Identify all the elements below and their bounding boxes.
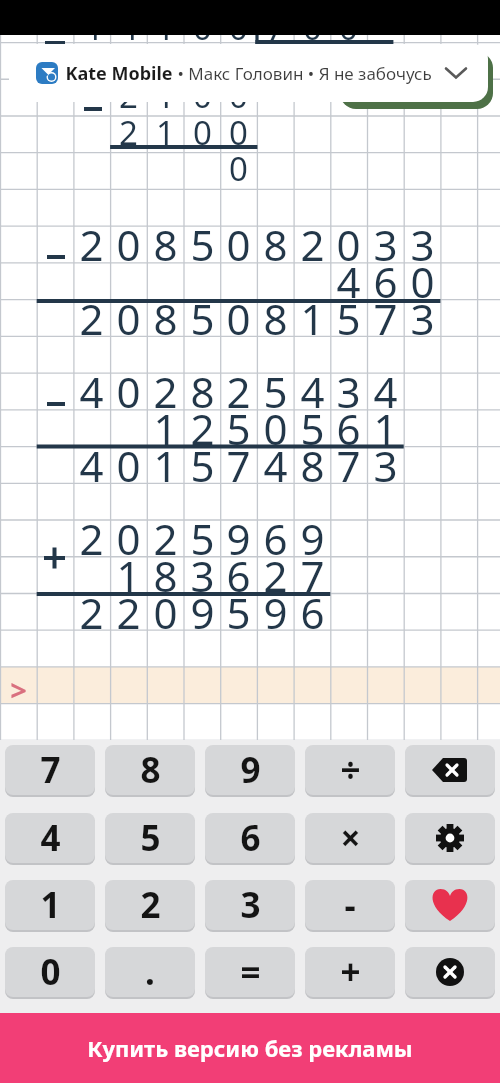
staticText: 7 bbox=[336, 437, 361, 494]
staticText: 1 bbox=[40, 881, 61, 929]
staticText: 0 bbox=[193, 73, 212, 118]
staticText: 9 bbox=[300, 510, 325, 567]
staticText: 0 bbox=[410, 253, 435, 310]
staticText: 6 bbox=[240, 814, 261, 862]
staticText: 9 bbox=[240, 746, 261, 794]
staticText: 7 bbox=[300, 547, 325, 604]
staticText: 7 bbox=[266, 5, 285, 50]
staticText: 1 bbox=[373, 400, 398, 457]
staticText: 0 bbox=[193, 5, 212, 50]
staticText: = bbox=[240, 948, 261, 996]
staticText: × bbox=[340, 814, 361, 862]
staticText: 2 bbox=[153, 363, 178, 420]
staticText: 2 bbox=[119, 73, 138, 118]
staticText: 3 bbox=[240, 881, 261, 929]
staticText: 2 bbox=[263, 547, 288, 604]
staticText: 0 bbox=[229, 146, 248, 191]
staticText: 0 bbox=[116, 363, 141, 420]
staticText: 6 bbox=[373, 253, 398, 310]
staticText: 3 bbox=[373, 216, 398, 273]
staticText: 0 bbox=[193, 110, 212, 155]
staticText: 8 bbox=[153, 216, 178, 273]
staticText: 0 bbox=[303, 5, 322, 50]
staticText: 7 bbox=[226, 437, 251, 494]
staticText: 4 bbox=[79, 363, 104, 420]
staticText: Kate Mobile bbox=[65, 61, 173, 86]
staticText: 5 bbox=[190, 290, 215, 347]
staticText: 1 bbox=[156, 5, 175, 50]
staticText: 2 bbox=[300, 216, 325, 273]
button[interactable]: 3 bbox=[205, 880, 295, 930]
staticText: 3 bbox=[336, 363, 361, 420]
button[interactable]: + bbox=[305, 947, 395, 997]
button[interactable]: 4 bbox=[5, 813, 95, 863]
staticText: 6 bbox=[336, 400, 361, 457]
staticText: 0 bbox=[229, 5, 248, 50]
button[interactable]: ÷ bbox=[305, 745, 395, 795]
button[interactable]: = bbox=[205, 947, 295, 997]
button[interactable]: 7 bbox=[5, 745, 95, 795]
staticText: . bbox=[145, 948, 155, 996]
staticText: 0 bbox=[116, 437, 141, 494]
staticText: 9 bbox=[226, 510, 251, 567]
button[interactable]: 5 bbox=[105, 813, 195, 863]
staticText: 5 bbox=[190, 510, 215, 567]
button[interactable]: 8 bbox=[105, 745, 195, 795]
staticText: 0 bbox=[40, 948, 61, 996]
staticText: 0 bbox=[226, 290, 251, 347]
button[interactable] bbox=[405, 880, 495, 930]
button[interactable]: Купить версию без рекламы bbox=[0, 1013, 500, 1083]
staticText: Купить версию без рекламы bbox=[87, 1033, 413, 1063]
staticText: 7 bbox=[373, 290, 398, 347]
button[interactable]: 2 bbox=[105, 880, 195, 930]
staticText: > bbox=[10, 670, 27, 707]
staticText: 0 bbox=[226, 216, 251, 273]
staticText: 1 bbox=[156, 73, 175, 118]
staticText: 1 bbox=[153, 437, 178, 494]
staticText: 0 bbox=[116, 290, 141, 347]
button[interactable]: 9 bbox=[205, 745, 295, 795]
button[interactable]: 0 bbox=[5, 947, 95, 997]
staticText: 5 bbox=[263, 363, 288, 420]
staticText: 2 bbox=[226, 363, 251, 420]
staticText: 1 bbox=[300, 290, 325, 347]
staticText: 4 bbox=[336, 253, 361, 310]
staticText: 2 bbox=[190, 400, 215, 457]
staticText: 4 bbox=[82, 5, 101, 50]
button[interactable]: . bbox=[105, 947, 195, 997]
staticText: • Макс Головин • Я не забочусь о... bbox=[173, 62, 432, 85]
staticText: 8 bbox=[263, 290, 288, 347]
staticText: 4 bbox=[373, 363, 398, 420]
staticText: 9 bbox=[263, 584, 288, 641]
staticText: 1 bbox=[156, 110, 175, 155]
button[interactable]: 6 bbox=[205, 813, 295, 863]
staticText: 0 bbox=[229, 73, 248, 118]
staticText: + bbox=[340, 948, 361, 996]
staticText: 2 bbox=[79, 216, 104, 273]
button[interactable] bbox=[405, 947, 495, 997]
staticText: ÷ bbox=[340, 746, 361, 794]
staticText: 2 bbox=[116, 584, 141, 641]
staticText: 0 bbox=[339, 5, 358, 50]
staticText: 5 bbox=[190, 437, 215, 494]
button[interactable]: - bbox=[305, 880, 395, 930]
staticText: 6 bbox=[263, 510, 288, 567]
staticText: 0 bbox=[116, 216, 141, 273]
staticText: 3 bbox=[373, 437, 398, 494]
staticText: 8 bbox=[153, 547, 178, 604]
staticText: 3 bbox=[410, 290, 435, 347]
button[interactable] bbox=[405, 745, 495, 795]
button[interactable]: Kate Mobile bbox=[9, 44, 488, 102]
staticText: 1 bbox=[116, 547, 141, 604]
staticText: 5 bbox=[190, 216, 215, 273]
staticText: 2 bbox=[119, 110, 138, 155]
staticText: 4 bbox=[79, 437, 104, 494]
button[interactable]: 1 bbox=[5, 880, 95, 930]
button[interactable] bbox=[405, 813, 495, 863]
button[interactable]: × bbox=[305, 813, 395, 863]
staticText: 8 bbox=[263, 216, 288, 273]
staticText: 5 bbox=[300, 400, 325, 457]
staticText: 5 bbox=[226, 584, 251, 641]
staticText: 3 bbox=[190, 547, 215, 604]
staticText: 4 bbox=[263, 437, 288, 494]
